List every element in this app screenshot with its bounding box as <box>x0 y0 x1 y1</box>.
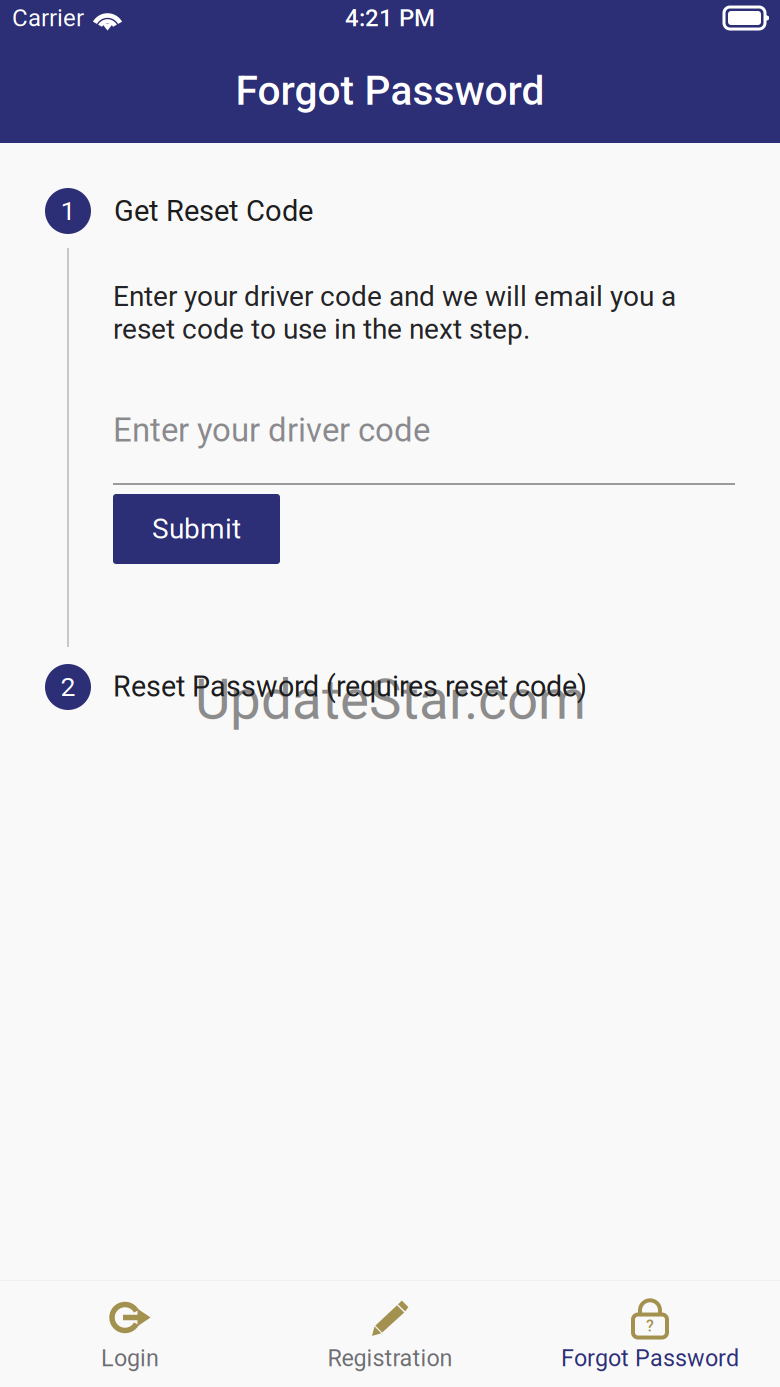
staticText: Reset Password (requires reset code) <box>113 670 587 704</box>
staticText: Login <box>101 1344 159 1372</box>
staticText: UpdateStar.com <box>195 668 586 732</box>
staticText: 4:21 PM <box>345 4 435 32</box>
staticText: Registration <box>327 1344 452 1372</box>
staticText: Enter your driver code <box>113 411 430 450</box>
staticText: 1 <box>60 195 75 227</box>
staticText: 2 <box>60 671 75 703</box>
staticText: Enter your driver code and we will email… <box>113 280 676 346</box>
button[interactable]: ? <box>520 1280 780 1387</box>
button[interactable]: Registration <box>260 1280 520 1387</box>
staticText: Submit <box>152 513 241 545</box>
button[interactable]: Submit <box>113 494 280 564</box>
staticText: Carrier <box>12 4 84 32</box>
staticText: ? <box>646 1317 654 1335</box>
staticText: Forgot Password <box>235 67 544 115</box>
button[interactable]: Login <box>0 1280 260 1387</box>
staticText: Forgot Password <box>561 1344 739 1372</box>
staticText: Get Reset Code <box>114 194 313 228</box>
